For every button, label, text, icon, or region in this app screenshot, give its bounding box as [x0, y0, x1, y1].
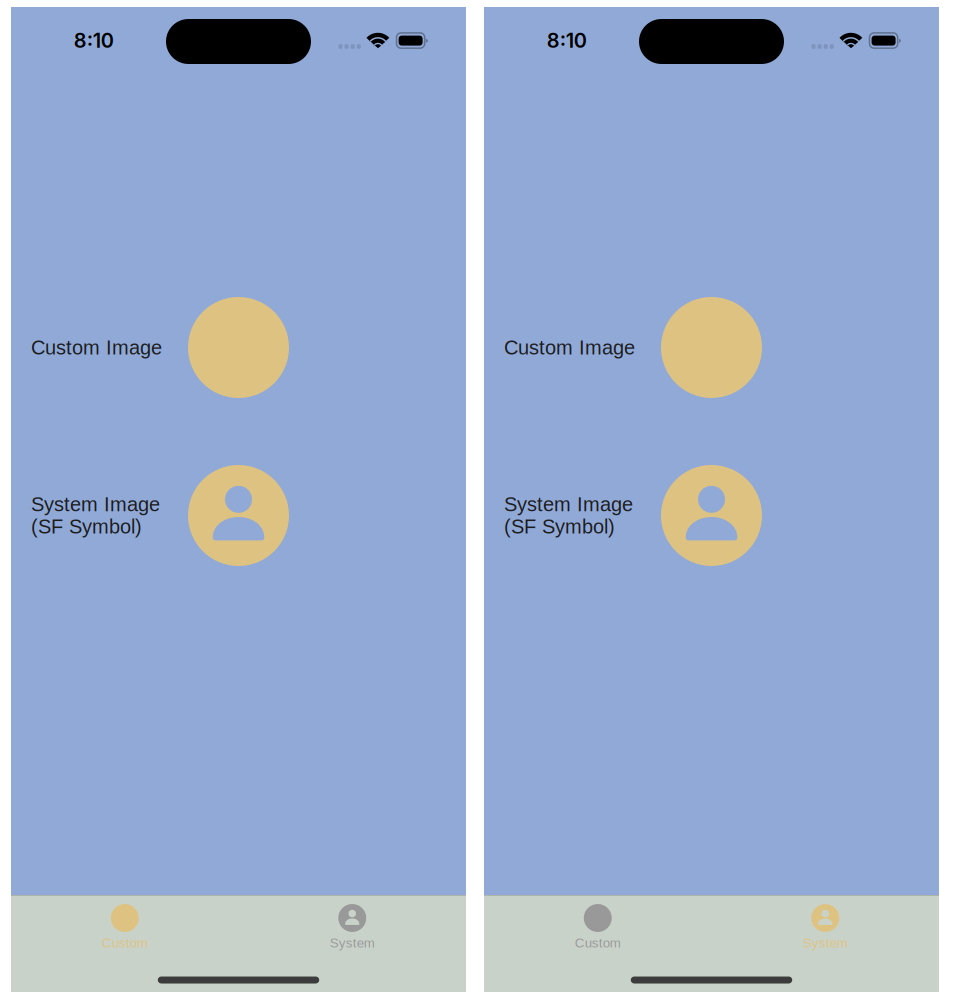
staticText: 8:10 — [547, 28, 587, 53]
staticText: Custom Image — [31, 336, 162, 359]
button[interactable]: System — [238, 895, 466, 956]
staticText: System — [803, 936, 848, 950]
staticText: Custom — [575, 936, 621, 950]
button[interactable]: Custom — [484, 895, 711, 956]
button[interactable]: System — [711, 895, 939, 956]
staticText: System Image (SF Symbol) — [504, 493, 633, 538]
button[interactable]: Custom — [11, 895, 238, 956]
staticText: Custom — [102, 936, 148, 950]
staticText: Custom Image — [504, 336, 635, 359]
staticText: System — [330, 936, 375, 950]
staticText: 8:10 — [74, 28, 114, 53]
staticText: System Image (SF Symbol) — [31, 493, 160, 538]
